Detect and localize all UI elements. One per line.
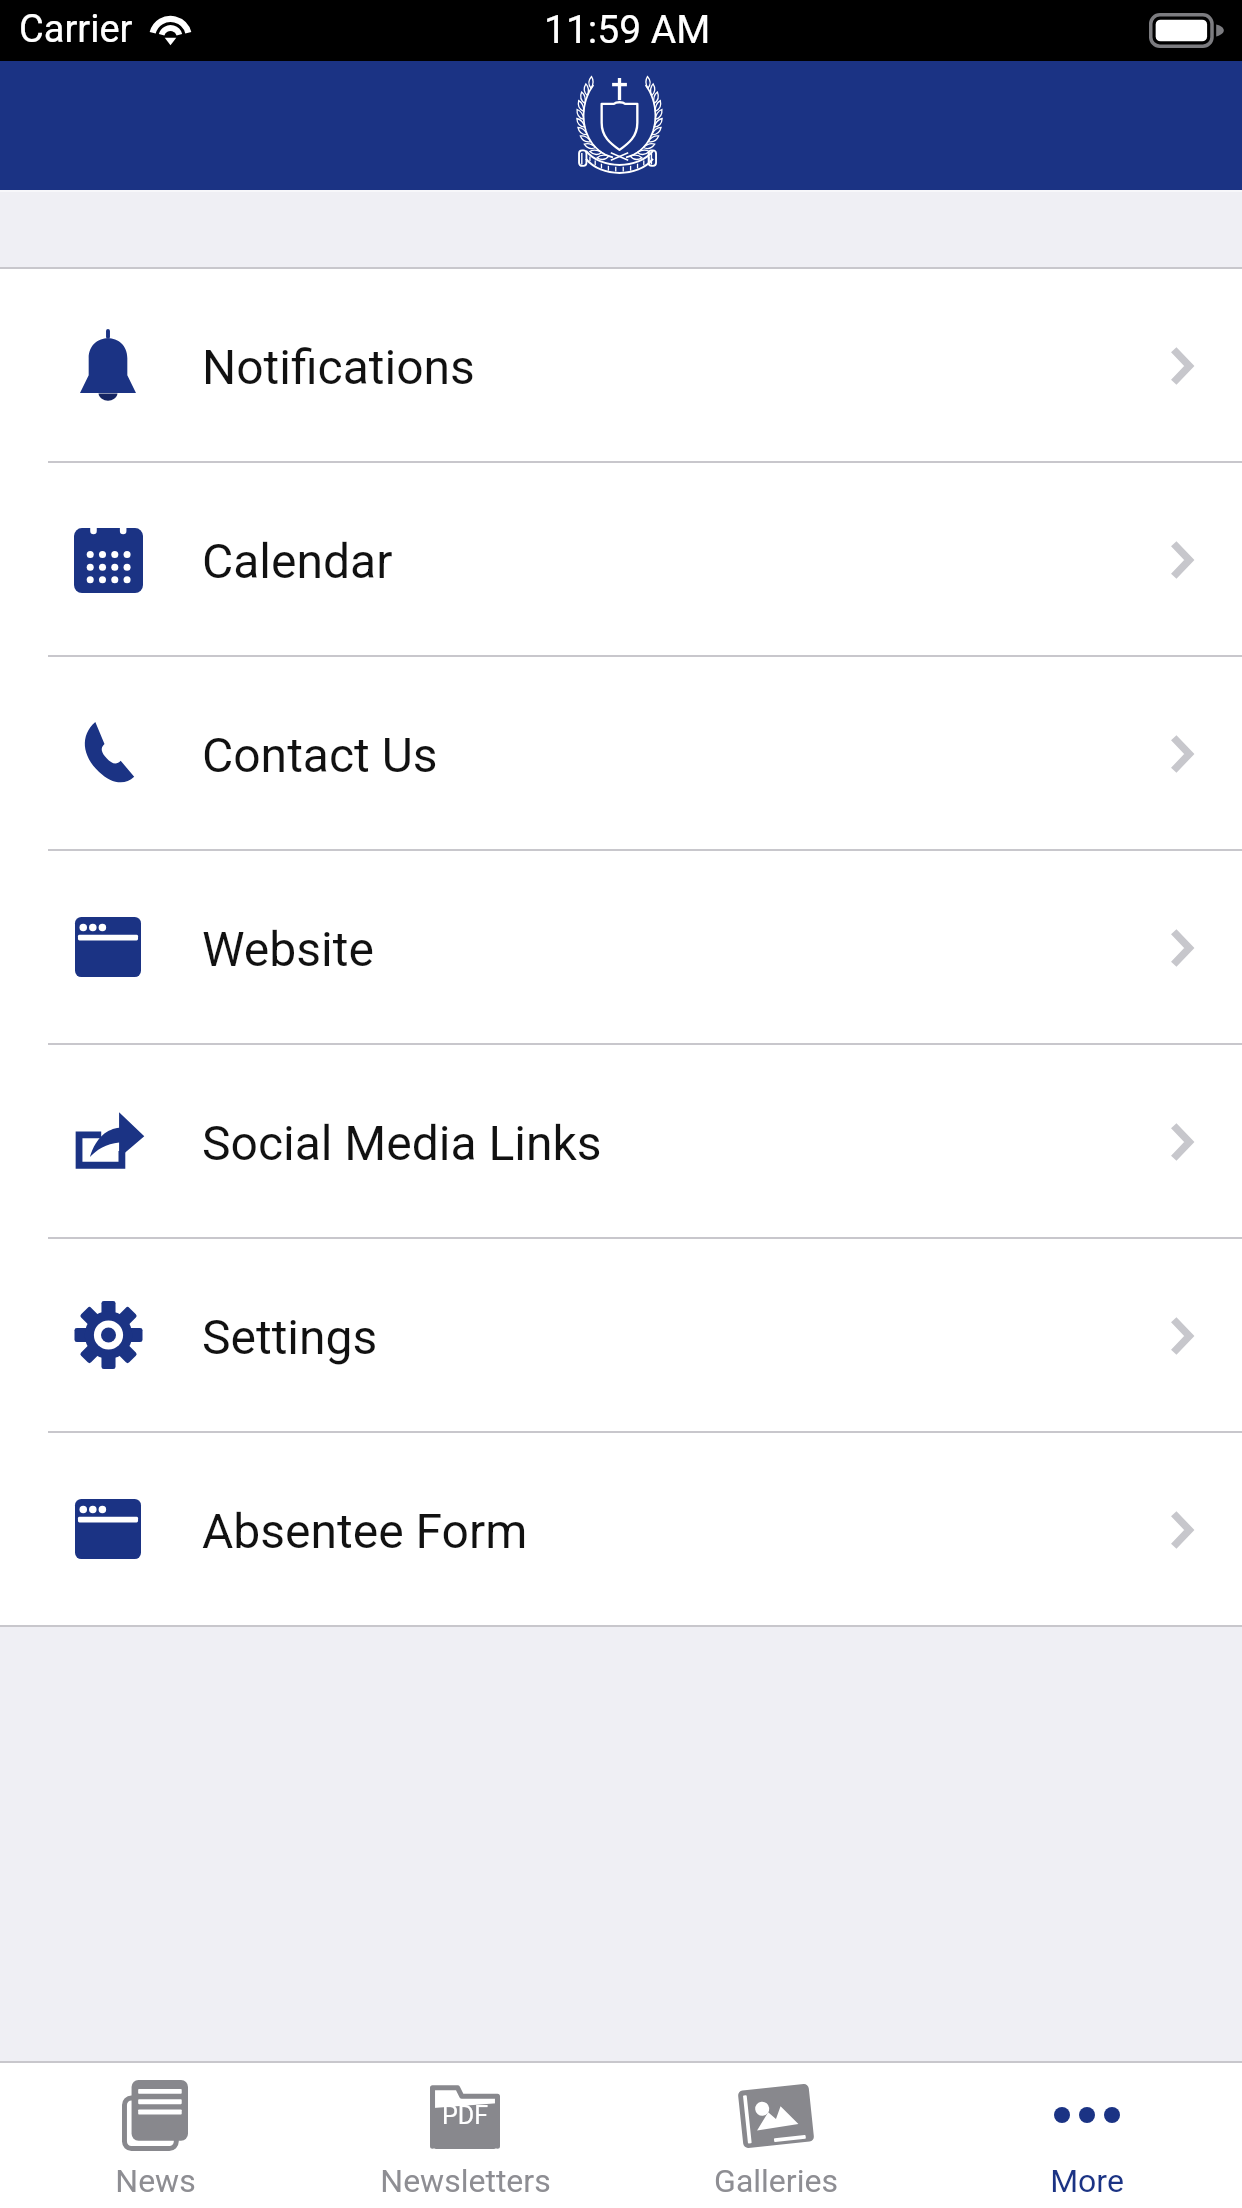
staticText: Absentee Form [202,1503,528,1559]
button[interactable]: Newsletters [310,2063,620,2208]
staticText: Carrier [19,7,133,52]
button[interactable]: News [0,2063,310,2208]
staticText: Social Media Links [202,1115,602,1171]
button[interactable]: Website [0,851,1242,1043]
button[interactable]: Kingsville school crest [0,61,1242,190]
staticText: 11:59 AM [544,7,711,53]
staticText: Galleries [714,2162,838,2200]
staticText: News [115,2162,196,2200]
staticText: Website [202,921,374,977]
button[interactable]: Social Media Links [0,1045,1242,1237]
staticText: Calendar [202,533,393,589]
staticText: Notifications [202,339,475,395]
staticText: More [1050,2162,1124,2200]
button[interactable]: Absentee Form [0,1433,1242,1625]
staticText: Settings [202,1309,378,1365]
button[interactable]: Calendar [0,463,1242,655]
button[interactable]: Galleries [620,2063,931,2208]
button[interactable]: Contact Us [0,657,1242,849]
staticText: Newsletters [380,2162,551,2200]
button[interactable]: More [931,2063,1242,2208]
staticText: Contact Us [202,727,438,783]
staticText: PDF [442,2101,488,2130]
button[interactable]: Notifications [0,269,1242,461]
button[interactable]: Settings [0,1239,1242,1431]
